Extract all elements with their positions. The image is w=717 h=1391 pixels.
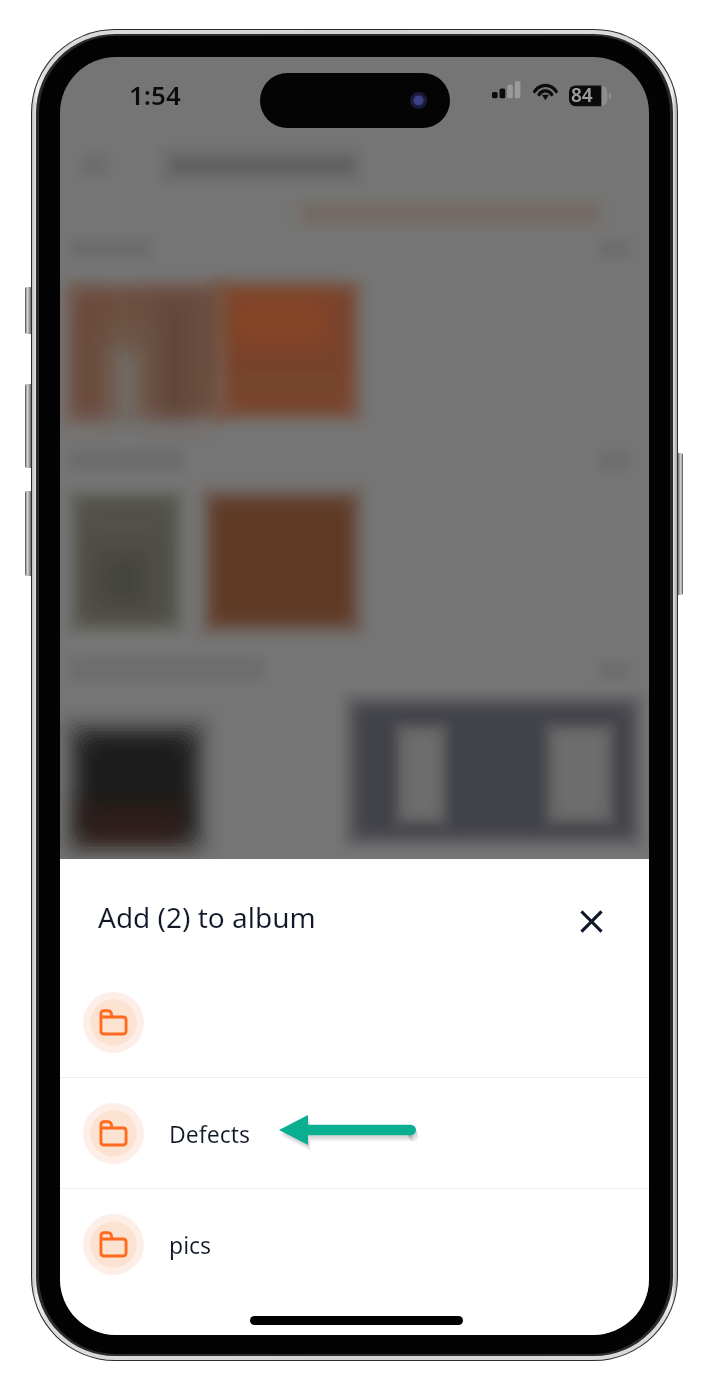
staticText: pics (169, 1229, 212, 1260)
button[interactable]: Close (564, 894, 618, 948)
staticText: 84 (571, 82, 593, 108)
button[interactable]: Dismiss (60, 57, 649, 859)
button[interactable]: pics (60, 1189, 649, 1299)
staticText: Defects (169, 1118, 251, 1149)
staticText: Add (2) to album (98, 898, 316, 936)
button[interactable] (60, 967, 649, 1077)
button[interactable]: Defects (60, 1078, 649, 1188)
staticText: 1:54 (129, 77, 181, 112)
